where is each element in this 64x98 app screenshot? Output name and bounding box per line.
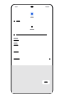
button[interactable]: Continue <box>42 80 50 84</box>
